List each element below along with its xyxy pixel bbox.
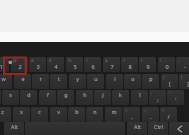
button[interactable]: Ctrl — [148, 122, 168, 135]
staticText: g — [64, 91, 68, 98]
staticText: > — [144, 108, 147, 114]
button[interactable]: z — [0, 107, 11, 122]
staticText: 6 — [91, 63, 95, 71]
staticText: 3 — [36, 63, 40, 71]
button[interactable]: . — [142, 107, 159, 122]
staticText: . — [150, 113, 152, 121]
button[interactable]: 9 — [139, 57, 156, 72]
staticText: : — [151, 91, 153, 97]
staticText: Ctrl — [154, 123, 163, 130]
button[interactable]: s — [2, 90, 19, 105]
staticText: ) — [160, 58, 162, 64]
button[interactable]: t — [50, 74, 67, 89]
button[interactable]: l — [131, 90, 148, 105]
staticText: / — [167, 113, 170, 121]
button[interactable]: x — [13, 107, 30, 122]
button[interactable]: 1 — [0, 57, 9, 72]
button[interactable]: ] — [179, 74, 189, 89]
staticText: ( — [141, 58, 143, 64]
button[interactable]: v — [50, 107, 67, 122]
button[interactable]: key — [169, 122, 189, 135]
button[interactable]: / — [160, 107, 177, 122]
staticText: u — [94, 75, 98, 82]
staticText: v — [57, 108, 60, 115]
button[interactable]: d — [20, 90, 37, 105]
button[interactable]: w — [0, 74, 12, 89]
staticText: # — [31, 58, 34, 64]
staticText: ; — [157, 96, 159, 104]
staticText: 2 — [18, 63, 22, 71]
staticText: t — [58, 75, 60, 82]
staticText: Alt — [134, 123, 141, 130]
button[interactable]: n — [86, 107, 103, 122]
button[interactable]: m — [105, 107, 122, 122]
staticText: * — [123, 58, 126, 64]
button[interactable]: 5 — [66, 57, 83, 72]
staticText: 0 — [165, 63, 169, 71]
button[interactable]: 0 — [158, 57, 175, 72]
staticText: < — [125, 108, 128, 114]
button[interactable]: c — [31, 107, 48, 122]
staticText: y — [76, 75, 79, 82]
staticText: ] — [187, 80, 189, 88]
staticText: p — [149, 75, 153, 82]
staticText: h — [83, 91, 87, 98]
staticText: r — [39, 75, 42, 82]
staticText: @ — [13, 58, 17, 64]
staticText: 9 — [146, 63, 150, 71]
staticText: o — [131, 75, 135, 82]
staticText: z — [1, 108, 4, 115]
other: Left arrow key — [170, 122, 189, 135]
button[interactable]: f — [39, 90, 56, 105]
staticText: , — [131, 113, 133, 121]
staticText: n — [93, 108, 97, 115]
button[interactable]: 8 — [121, 57, 138, 72]
button[interactable]: g — [57, 90, 74, 105]
staticText: Alt — [11, 123, 18, 130]
staticText: c — [38, 108, 41, 115]
button[interactable]: 4 — [47, 57, 64, 72]
button[interactable]: ; — [149, 90, 166, 105]
button[interactable]: [ — [161, 74, 178, 89]
button[interactable]: 7 — [103, 57, 120, 72]
button[interactable]: o — [124, 74, 141, 89]
staticText: m — [111, 108, 117, 115]
button[interactable]: 6 — [84, 57, 101, 72]
staticText: l — [139, 91, 141, 98]
staticText: & — [105, 58, 109, 64]
staticText: ? — [162, 108, 164, 114]
button[interactable]: 3 — [29, 57, 46, 72]
button[interactable]: , — [123, 107, 140, 122]
staticText: [ — [169, 80, 171, 88]
button[interactable]: - — [176, 57, 189, 72]
button[interactable]: h — [76, 90, 93, 105]
button[interactable]: a — [0, 90, 1, 105]
staticText: ' — [175, 96, 177, 104]
button[interactable]: y — [69, 74, 86, 89]
staticText: % — [68, 58, 72, 64]
button[interactable]: ' — [167, 90, 184, 105]
button[interactable]: i — [106, 74, 123, 89]
button[interactable]: r — [32, 74, 49, 89]
staticText: i — [114, 75, 116, 82]
button[interactable]: j — [94, 90, 111, 105]
staticText: - — [184, 63, 186, 71]
button[interactable]: k — [112, 90, 129, 105]
button[interactable]: u — [87, 74, 104, 89]
staticText: k — [119, 91, 122, 98]
button[interactable]: Alt — [4, 122, 24, 135]
staticText: x — [20, 108, 23, 115]
staticText: 4 — [54, 63, 58, 71]
button[interactable]: Alt — [127, 122, 147, 135]
staticText: e — [21, 75, 25, 82]
staticText: 5 — [73, 63, 77, 71]
staticText: } — [181, 75, 183, 81]
button[interactable]: e — [14, 74, 31, 89]
button[interactable]: p — [142, 74, 159, 89]
staticText: d — [27, 91, 31, 98]
staticText: $ — [49, 58, 52, 64]
button[interactable]: 2 — [11, 57, 28, 72]
staticText: 7 — [110, 63, 114, 71]
button[interactable]: b — [68, 107, 85, 122]
